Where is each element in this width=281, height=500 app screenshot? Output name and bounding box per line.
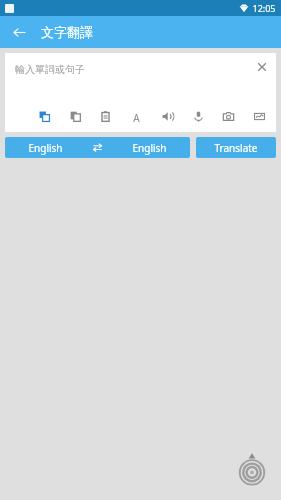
staticText: 12:05 <box>252 2 276 14</box>
button[interactable]: Voice input <box>189 107 207 125</box>
staticText: English <box>132 141 167 155</box>
staticText: A <box>133 111 140 122</box>
button[interactable]: Copy <box>66 107 84 125</box>
button[interactable]: Handwriting <box>250 107 268 125</box>
button[interactable]: Speak <box>158 107 176 125</box>
staticText: 文字翻譯 <box>41 24 93 40</box>
staticText: Translate <box>214 141 258 155</box>
button[interactable]: English <box>5 137 85 158</box>
button[interactable]: Clear <box>252 57 272 77</box>
button[interactable]: Translate text <box>35 107 53 125</box>
button[interactable]: Swap languages <box>85 137 109 158</box>
button[interactable]: English <box>109 137 190 158</box>
button[interactable]: Camera <box>219 107 237 125</box>
button[interactable]: Back <box>5 18 33 46</box>
staticText: 輸入單詞或句子 <box>15 63 85 76</box>
button[interactable]: Text size <box>127 107 145 125</box>
button[interactable]: Paste <box>96 107 114 125</box>
button[interactable]: Assistive touch <box>235 452 269 486</box>
staticText: English <box>28 141 63 155</box>
button[interactable]: Translate <box>196 137 276 158</box>
